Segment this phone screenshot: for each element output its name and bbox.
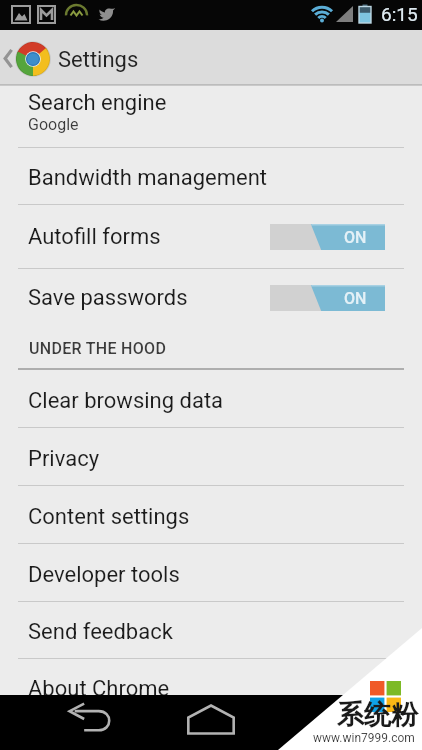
staticText: Clear browsing data: [28, 388, 224, 414]
staticText: 系统粉: [337, 698, 418, 732]
staticText: ON: [344, 289, 367, 308]
staticText: Autofill forms: [28, 224, 161, 250]
staticText: Settings: [58, 47, 139, 73]
staticText: Google: [28, 115, 79, 134]
button[interactable]: Home: [184, 704, 238, 735]
staticText: Search engine: [28, 90, 167, 116]
button[interactable]: Bandwidth management: [0, 148, 422, 205]
staticText: About Chrome: [28, 676, 170, 702]
button[interactable]: Content settings: [0, 486, 422, 544]
other: Up: [2, 45, 14, 72]
button[interactable]: Up: [0, 30, 200, 86]
button[interactable]: Search engine: [0, 86, 422, 148]
button[interactable]: Autofill forms: [0, 205, 422, 269]
button[interactable]: Back: [64, 703, 120, 737]
button[interactable]: Privacy: [0, 428, 422, 486]
staticText: Bandwidth management: [28, 165, 267, 191]
staticText: Save passwords: [28, 285, 188, 311]
staticText: Developer tools: [28, 562, 180, 588]
staticText: www.win7999.com: [313, 731, 415, 745]
button[interactable]: Clear browsing data: [0, 370, 422, 428]
button[interactable]: Developer tools: [0, 544, 422, 602]
button[interactable]: About Chrome: [0, 659, 422, 716]
staticText: Privacy: [28, 446, 100, 472]
staticText: Content settings: [28, 504, 190, 530]
staticText: ON: [344, 228, 367, 247]
button[interactable]: Send feedback: [0, 602, 422, 659]
staticText: UNDER THE HOOD: [29, 339, 167, 358]
staticText: 6:15: [381, 3, 418, 25]
staticText: Send feedback: [28, 619, 173, 645]
button[interactable]: Save passwords: [0, 269, 422, 326]
